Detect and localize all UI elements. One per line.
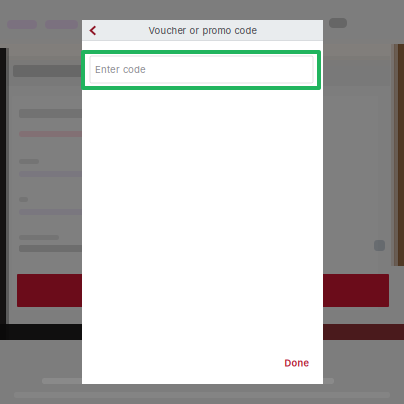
button[interactable]: Done bbox=[277, 354, 317, 372]
staticText: Enter code bbox=[95, 64, 146, 75]
staticText: Done bbox=[284, 357, 309, 369]
button[interactable]: Back bbox=[84, 20, 102, 41]
staticText: Voucher or promo code bbox=[148, 25, 256, 36]
